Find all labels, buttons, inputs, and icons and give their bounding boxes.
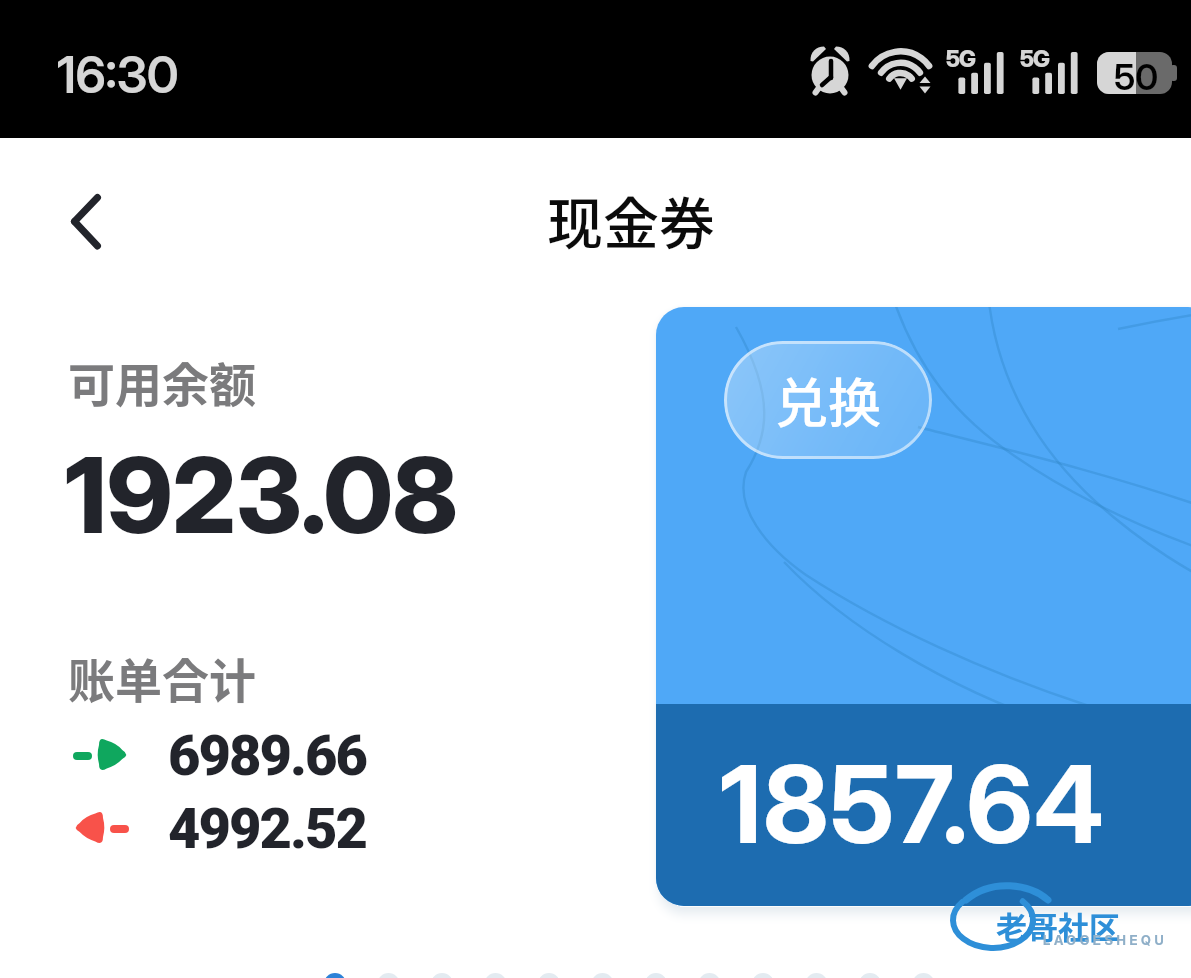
staticText: 现金券: [547, 179, 715, 260]
button[interactable]: 6989.66: [72, 723, 366, 789]
button[interactable]: 4992.52: [72, 796, 366, 862]
button[interactable]: Back: [41, 160, 129, 248]
staticText: LAOGESHEQU: [1043, 932, 1168, 948]
staticText: 可用余额: [68, 347, 256, 415]
staticText: 50: [1114, 55, 1159, 97]
staticText: 兑换: [775, 362, 881, 439]
staticText: 老哥社区: [996, 903, 1120, 948]
staticText: 账单合计: [68, 643, 256, 711]
staticText: 6989.66: [168, 723, 366, 789]
staticText: 4992.52: [168, 796, 366, 862]
staticText: 5G: [1020, 45, 1050, 73]
staticText: 1857.64: [720, 739, 1106, 868]
staticText: 5G: [946, 45, 976, 73]
button[interactable]: 兑换: [724, 341, 932, 459]
button[interactable]: 1857.64: [656, 307, 1191, 906]
staticText: 16:30: [57, 45, 179, 105]
staticText: 1923.08: [65, 432, 458, 558]
